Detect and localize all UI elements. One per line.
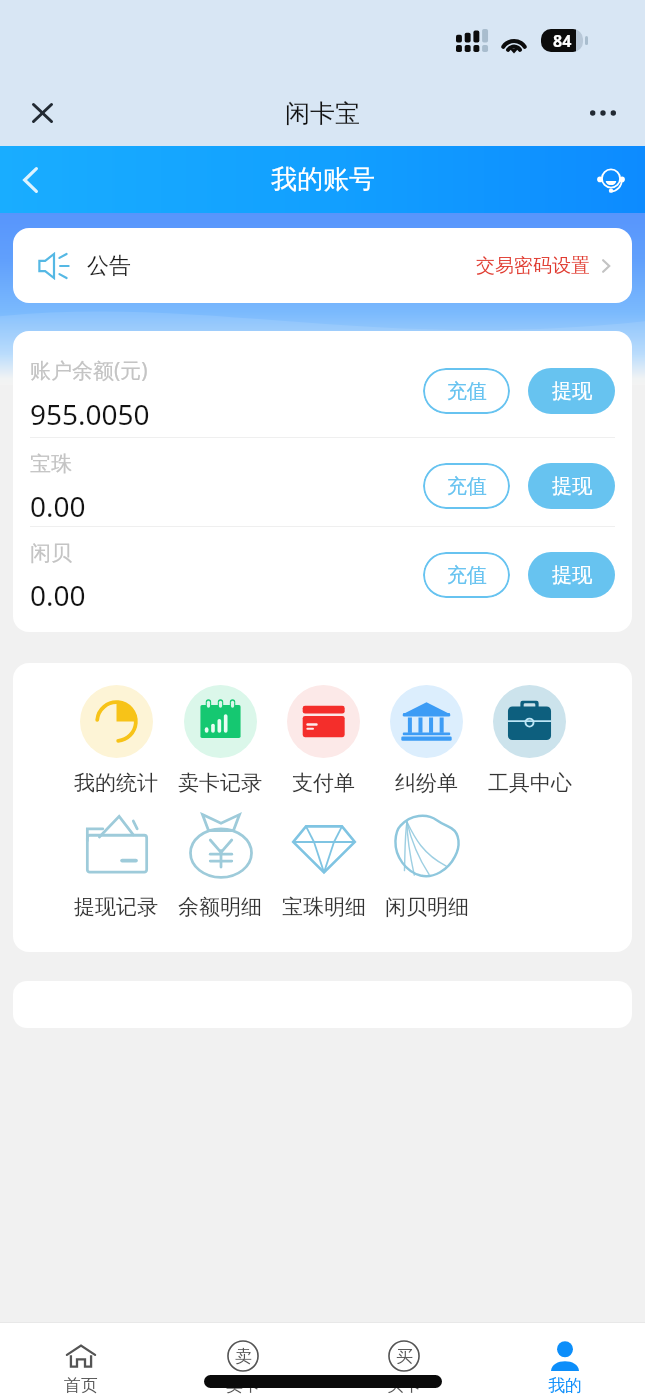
button[interactable]: 充值 — [423, 552, 510, 598]
button[interactable]: 我的 — [484, 1323, 645, 1396]
staticText: 闲贝 — [30, 540, 72, 566]
button[interactable]: 充值 — [423, 368, 510, 414]
staticText: 0.00 — [30, 487, 86, 525]
button[interactable]: 公告 — [13, 228, 632, 303]
staticText: 卖 — [235, 1346, 252, 1367]
staticText: 交易密码设置 — [476, 254, 590, 278]
staticText: 我的 — [548, 1375, 582, 1396]
staticText: 卖卡记录 — [178, 770, 262, 796]
button[interactable]: Close — [18, 89, 66, 137]
button[interactable]: 卖 — [162, 1323, 323, 1396]
button[interactable]: 买 — [323, 1323, 484, 1396]
button[interactable]: 提现 — [528, 552, 615, 598]
staticText: 我的统计 — [74, 770, 158, 796]
staticText: 提现记录 — [74, 894, 158, 920]
staticText: 闲卡宝 — [285, 98, 360, 129]
button[interactable]: More options — [579, 89, 627, 137]
staticText: 宝珠 — [30, 451, 72, 477]
button[interactable]: Back — [5, 155, 55, 205]
staticText: 宝珠明细 — [282, 894, 366, 920]
button[interactable]: 宝珠明细 — [272, 809, 375, 920]
staticText: 955.0050 — [30, 395, 150, 433]
staticText: 我的账号 — [271, 163, 375, 196]
button[interactable]: 首页 — [0, 1323, 162, 1396]
button[interactable]: 卖卡记录 — [168, 685, 272, 796]
button[interactable]: 我的统计 — [64, 685, 168, 796]
staticText: 卖卡 — [226, 1375, 260, 1396]
button[interactable]: Customer service — [587, 156, 635, 204]
staticText: 充值 — [447, 563, 487, 588]
button[interactable]: 余额明细 — [168, 809, 272, 920]
staticText: 充值 — [447, 474, 487, 499]
button[interactable]: 提现记录 — [64, 809, 168, 920]
staticText: 余额明细 — [178, 894, 262, 920]
staticText: 提现 — [552, 474, 592, 499]
staticText: 公告 — [87, 252, 131, 280]
button[interactable]: 提现 — [528, 463, 615, 509]
button[interactable]: 纠纷单 — [375, 685, 478, 796]
staticText: 工具中心 — [488, 770, 572, 796]
staticText: 首页 — [64, 1375, 98, 1396]
staticText: 纠纷单 — [395, 770, 458, 796]
staticText: 84 — [553, 30, 572, 52]
staticText: 买 — [396, 1346, 413, 1367]
staticText: 支付单 — [292, 770, 355, 796]
button[interactable]: 闲贝明细 — [375, 809, 478, 920]
button[interactable]: 充值 — [423, 463, 510, 509]
button[interactable]: 提现 — [528, 368, 615, 414]
staticText: 提现 — [552, 379, 592, 404]
staticText: 提现 — [552, 563, 592, 588]
staticText: 充值 — [447, 379, 487, 404]
staticText: 账户余额(元) — [30, 356, 148, 385]
button[interactable]: 工具中心 — [478, 685, 581, 796]
button[interactable]: 支付单 — [272, 685, 375, 796]
staticText: 闲贝明细 — [385, 894, 469, 920]
staticText: 买卡 — [387, 1375, 421, 1396]
staticText: 0.00 — [30, 576, 86, 614]
